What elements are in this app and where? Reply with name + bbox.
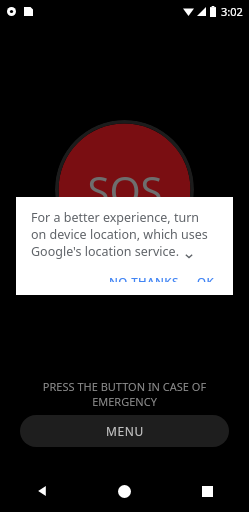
button[interactable]: MENU <box>20 415 229 447</box>
staticText: PRESS THE BUTTON IN CASE OF EMERGENCY <box>26 379 223 409</box>
staticText: NO THANKS <box>109 274 179 282</box>
button[interactable]: Home <box>83 470 166 512</box>
staticText: SOS <box>87 163 163 217</box>
button[interactable]: Recent apps <box>166 470 249 512</box>
button[interactable]: SOS emergency button <box>55 120 194 259</box>
button[interactable]: OK <box>191 270 221 286</box>
staticText: OK <box>197 274 215 282</box>
button[interactable]: NO THANKS <box>103 270 185 286</box>
staticText: MENU <box>106 423 144 439</box>
button[interactable]: Back <box>0 470 83 512</box>
staticText: 3:02 <box>221 4 243 19</box>
staticText: For a better experience, turn on device … <box>31 209 208 260</box>
